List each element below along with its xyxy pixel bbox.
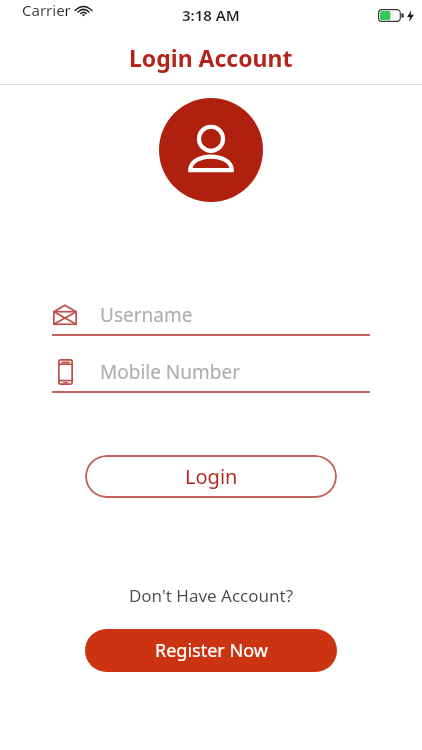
staticText: Mobile Number [100,359,241,385]
button[interactable]: Register Now [85,629,337,672]
staticText: Carrier [22,0,71,20]
staticText: 3:18 AM [182,5,240,25]
button[interactable]: Mobile Number [52,355,370,393]
button[interactable]: Profile avatar [159,98,263,202]
staticText: Username [100,302,193,328]
staticText: Don't Have Account? [0,584,422,607]
staticText: Login Account [129,42,293,73]
staticText: Register Now [155,638,268,663]
button[interactable]: Login [85,455,337,498]
staticText: Login [185,463,238,490]
button[interactable]: Username [52,298,370,336]
